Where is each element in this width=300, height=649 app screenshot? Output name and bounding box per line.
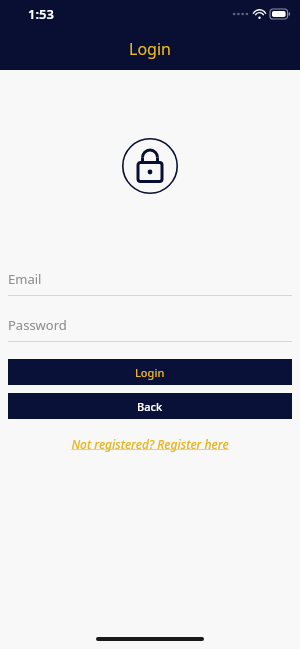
staticText: 1:53 [28,5,54,23]
button[interactable]: Back [8,393,292,419]
staticText: Email [8,270,42,288]
other: Secure login [122,138,178,194]
button[interactable]: Email [0,270,300,296]
staticText: Back [137,399,163,414]
staticText: Login [129,38,171,60]
button[interactable]: Not registered? Register here [65,433,235,455]
button[interactable]: Password [0,316,300,342]
staticText: Password [8,316,67,334]
staticText: Not registered? Register here [71,436,229,452]
button[interactable]: Login [8,359,292,385]
staticText: Login [135,365,165,380]
